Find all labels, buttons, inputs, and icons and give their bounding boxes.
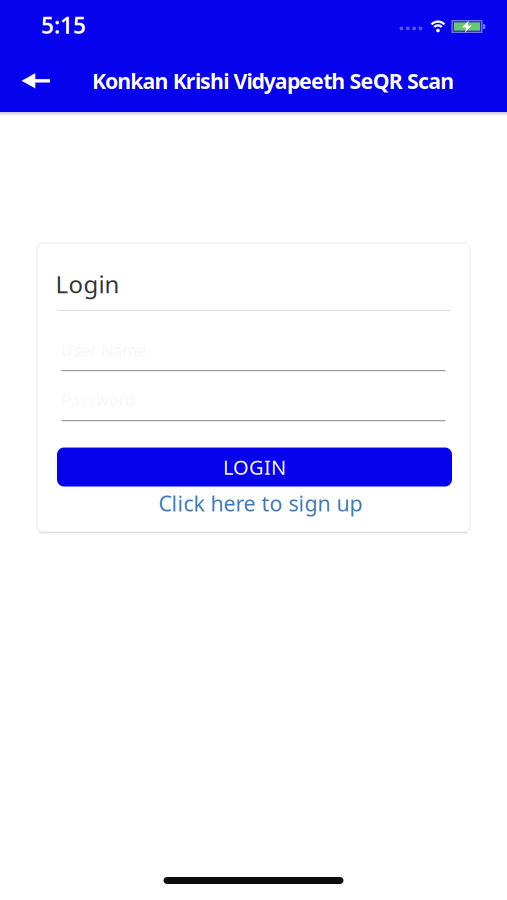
button[interactable]: Back — [21, 67, 50, 95]
staticText: Login — [55, 268, 119, 300]
staticText: 5:15 — [41, 10, 86, 40]
staticText: Konkan Krishi Vidyapeeth SeQR Scan — [92, 66, 454, 95]
button[interactable]: LOGIN — [57, 447, 452, 486]
button[interactable]: Click here to sign up — [63, 489, 458, 517]
staticText: LOGIN — [223, 454, 286, 480]
staticText: Click here to sign up — [158, 489, 362, 517]
